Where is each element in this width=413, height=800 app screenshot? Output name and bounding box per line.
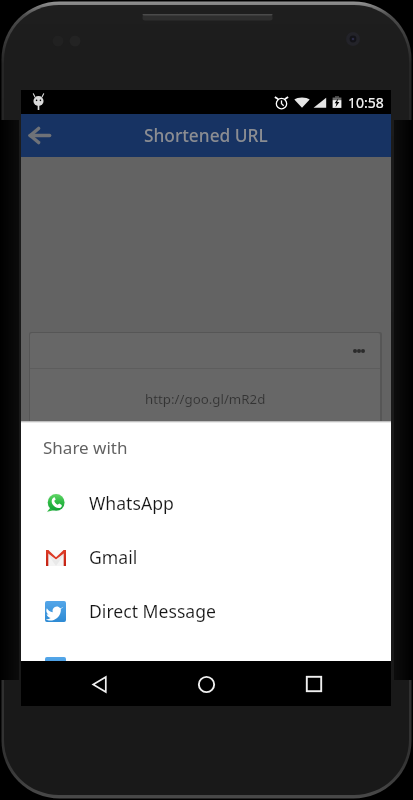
- staticText: Share with: [43, 436, 128, 459]
- staticText: http://goo.gl/mR2d: [145, 390, 266, 408]
- staticText: 10:58: [348, 93, 384, 112]
- button[interactable]: Direct Message: [21, 584, 391, 638]
- button[interactable]: Home: [186, 664, 226, 704]
- button[interactable]: Navigate up: [21, 114, 57, 157]
- staticText: Shortened URL: [144, 124, 268, 148]
- button[interactable]: WhatsApp: [21, 476, 391, 530]
- staticText: Gmail: [89, 545, 138, 569]
- button[interactable]: Recent apps: [294, 664, 334, 704]
- button[interactable]: Back: [79, 664, 119, 704]
- button[interactable]: More options: [344, 333, 380, 368]
- button[interactable]: Tweet: [21, 640, 391, 661]
- staticText: WhatsApp: [89, 491, 174, 515]
- staticText: Direct Message: [89, 599, 216, 623]
- button[interactable]: Gmail: [21, 530, 391, 584]
